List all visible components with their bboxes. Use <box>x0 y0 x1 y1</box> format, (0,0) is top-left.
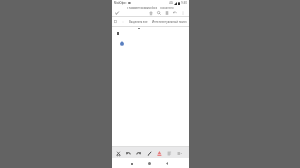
button[interactable]: Text color <box>155 148 164 158</box>
staticText: МойОфис <box>114 1 127 5</box>
button[interactable]: Format painter <box>145 148 154 158</box>
button[interactable]: Add comment <box>147 9 155 16</box>
button[interactable]: Home <box>145 159 154 168</box>
button[interactable]: Recents <box>127 159 136 168</box>
button[interactable]: Paste <box>112 17 119 26</box>
button[interactable]: More <box>179 9 187 16</box>
staticText: с комментариями.docx <box>127 6 158 9</box>
staticText: 9:30 <box>181 1 187 5</box>
staticText: сохранено <box>160 6 174 9</box>
button[interactable]: Done <box>113 9 121 16</box>
button[interactable]: Find <box>155 9 163 16</box>
button[interactable]: Cut <box>114 148 123 158</box>
button[interactable]: Выделить все <box>128 20 149 24</box>
button[interactable]: View mode <box>163 9 171 16</box>
button[interactable]: Back <box>162 159 171 168</box>
button[interactable]: Redo <box>134 148 143 158</box>
staticText: 4G <box>169 1 173 5</box>
button[interactable]: More tools <box>175 148 184 158</box>
button[interactable]: Undo <box>124 148 133 158</box>
button[interactable]: Align <box>165 148 174 158</box>
button[interactable]: Undo <box>171 9 179 16</box>
button[interactable]: Интеллектуальный поиск <box>151 20 188 24</box>
